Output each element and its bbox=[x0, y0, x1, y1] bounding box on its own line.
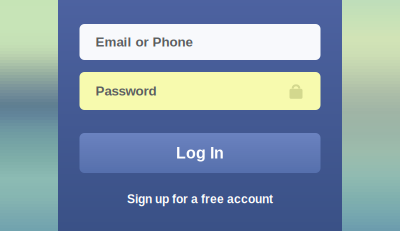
staticText: Password bbox=[95, 84, 156, 98]
staticText: Email or Phone bbox=[95, 35, 192, 49]
button[interactable]: Sign up for a free account bbox=[79, 190, 320, 208]
button[interactable]: Password bbox=[79, 72, 320, 110]
button[interactable]: Email or Phone bbox=[79, 24, 320, 60]
staticText: Sign up for a free account bbox=[127, 192, 273, 206]
staticText: Log In bbox=[176, 144, 224, 162]
button[interactable]: Log In bbox=[79, 133, 320, 173]
